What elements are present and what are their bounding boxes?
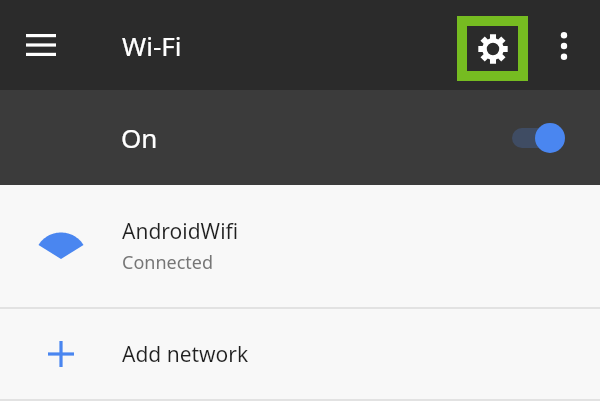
staticText: AndroidWifi	[122, 217, 239, 246]
staticText: Connected	[122, 250, 214, 275]
staticText: On	[121, 120, 158, 155]
button[interactable]: On	[0, 90, 600, 185]
button[interactable]: More options	[543, 23, 585, 69]
button[interactable]: Navigation menu	[16, 20, 66, 70]
button[interactable]: Add network	[0, 309, 600, 399]
staticText: Add network	[122, 340, 249, 369]
button[interactable]: AndroidWifi	[0, 185, 600, 307]
staticText: Wi-Fi	[122, 28, 182, 63]
button[interactable]: Wi-Fi settings	[462, 21, 523, 76]
